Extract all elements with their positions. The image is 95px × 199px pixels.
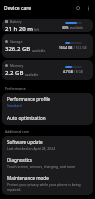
staticText: 21 h 20 m: [5, 25, 33, 32]
staticText: 4.7 GB: [63, 70, 73, 74]
staticText: Storage: [10, 39, 23, 44]
button[interactable]: More options: [83, 3, 93, 13]
staticText: available: [25, 73, 39, 77]
staticText: Maintenance mode: [7, 175, 49, 181]
button[interactable]: Memory: [2, 60, 93, 80]
button[interactable]: Performance profile: [2, 93, 93, 111]
button[interactable]: Diagnostics: [2, 154, 93, 172]
staticText: Auto optimization: [7, 115, 46, 121]
staticText: 326.2 GB: [5, 45, 31, 53]
staticText: Protect your privacy while your phone is…: [7, 182, 88, 192]
staticText: Additional care: [5, 129, 29, 134]
staticText: Device care: [4, 5, 73, 12]
staticText: Performance profile: [7, 96, 51, 102]
button[interactable]: Battery: [2, 19, 93, 32]
staticText: Battery: [10, 19, 22, 24]
button[interactable]: Software update: [2, 136, 93, 154]
staticText: Memory: [10, 63, 24, 68]
staticText: Standard: [7, 103, 22, 108]
staticText: left: [34, 28, 39, 32]
staticText: Touch screen, sensors, charging, and mor…: [7, 164, 76, 169]
button[interactable]: Storage: [2, 34, 93, 58]
staticText: 2.2 GB: [5, 69, 24, 77]
staticText: / 8 GB: [73, 70, 83, 74]
button[interactable]: Search: [73, 3, 83, 13]
staticText: Software update: [7, 139, 43, 145]
staticText: 163.4 GB: [59, 46, 73, 50]
staticText: / 512 GB: [73, 46, 87, 50]
staticText: 30%: [62, 26, 69, 30]
staticText: Performance: [5, 86, 26, 91]
staticText: Diagnostics: [7, 157, 33, 163]
button[interactable]: Auto optimization: [2, 111, 93, 125]
staticText: available: [32, 49, 46, 53]
staticText: available: [69, 26, 84, 30]
staticText: Last checked on April 28, 2024: [7, 146, 56, 151]
button[interactable]: Maintenance mode: [2, 172, 93, 195]
